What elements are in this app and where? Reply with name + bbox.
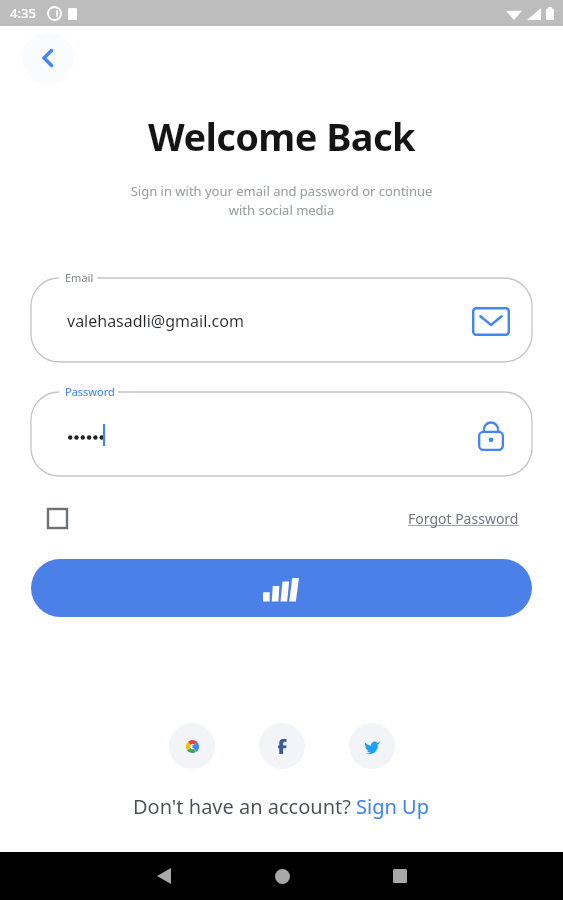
staticText: Forgot Password: [408, 509, 519, 528]
button[interactable]: Don't have an account? Sign Up: [0, 793, 563, 820]
button[interactable]: Sign in with Twitter: [349, 723, 395, 769]
staticText: 4:35: [10, 4, 36, 22]
staticText: Password: [65, 384, 115, 399]
button[interactable]: Back: [133, 852, 195, 900]
staticText: Email: [65, 270, 94, 285]
staticText: valehasadli@gmail.com: [67, 310, 244, 332]
staticText: Don't have an account? Sign Up: [133, 793, 430, 820]
staticText: Sign in with your email and password or …: [28, 182, 535, 219]
button[interactable]: Remember me: [40, 501, 74, 535]
button[interactable]: Email icon: [470, 300, 512, 342]
button[interactable]: Home: [251, 852, 313, 900]
button[interactable]: Sign in with Facebook: [259, 723, 305, 769]
button[interactable]: Show password: [470, 414, 512, 456]
button[interactable]: Sign In: [31, 559, 532, 617]
button[interactable]: Sign in with Google: [169, 723, 215, 769]
button[interactable]: Password: [31, 383, 532, 477]
button[interactable]: Back: [22, 32, 74, 84]
button[interactable]: Recents: [369, 852, 431, 900]
staticText: Welcome Back: [0, 110, 563, 162]
button[interactable]: Email: [31, 269, 532, 363]
button[interactable]: Forgot Password: [404, 503, 523, 534]
